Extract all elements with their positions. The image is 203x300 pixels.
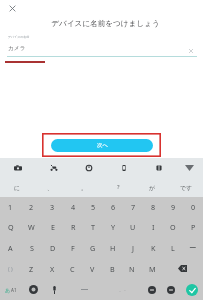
staticText: 4 bbox=[71, 202, 76, 212]
button[interactable]: Y bbox=[103, 217, 123, 237]
staticText: 6 bbox=[111, 202, 116, 212]
button[interactable] bbox=[63, 279, 106, 300]
button[interactable]: C bbox=[62, 258, 82, 279]
button[interactable]: です bbox=[169, 177, 203, 197]
staticText: L bbox=[171, 243, 175, 253]
staticText: B bbox=[110, 264, 115, 274]
button[interactable]: 8 bbox=[143, 197, 163, 217]
button[interactable]: Emoji suggestion bbox=[36, 158, 71, 177]
button[interactable]: M bbox=[142, 258, 162, 279]
staticText: I bbox=[152, 222, 155, 232]
button[interactable]: 9 bbox=[163, 197, 183, 217]
button[interactable]: Clear text bbox=[184, 44, 197, 57]
button[interactable]: F bbox=[63, 237, 83, 258]
staticText: 。 bbox=[81, 184, 87, 191]
button[interactable]: 7 bbox=[123, 197, 143, 217]
staticText: G bbox=[90, 243, 96, 253]
staticText: O bbox=[170, 222, 176, 232]
button[interactable]: あ bbox=[0, 279, 22, 300]
staticText: T bbox=[91, 222, 95, 232]
button[interactable]: U bbox=[123, 217, 143, 237]
staticText: S bbox=[30, 243, 34, 253]
staticText: R bbox=[71, 222, 76, 232]
button[interactable]: R bbox=[63, 217, 83, 237]
button[interactable]: Z bbox=[21, 258, 42, 279]
staticText: 9 bbox=[171, 202, 176, 212]
button[interactable]: Period bbox=[161, 279, 180, 300]
staticText: 次へ bbox=[97, 142, 108, 149]
button[interactable]: S bbox=[21, 237, 42, 258]
staticText: U bbox=[130, 222, 136, 232]
button[interactable]: D bbox=[42, 237, 63, 258]
button[interactable]: ー bbox=[183, 237, 203, 258]
button[interactable]: 次へ bbox=[51, 139, 153, 152]
staticText: W bbox=[28, 222, 35, 232]
staticText: Z bbox=[29, 264, 34, 274]
button[interactable]: 5 bbox=[83, 197, 103, 217]
button[interactable]: ( ) bbox=[0, 258, 21, 279]
staticText: V bbox=[90, 264, 95, 274]
staticText: 8 bbox=[151, 202, 156, 212]
button[interactable]: A bbox=[0, 237, 21, 258]
button[interactable]: O bbox=[163, 217, 183, 237]
button[interactable]: Enter bbox=[180, 279, 203, 300]
button[interactable]: W bbox=[21, 217, 42, 237]
staticText: N bbox=[129, 264, 135, 274]
button[interactable]: 3 bbox=[42, 197, 63, 217]
button[interactable]: N bbox=[122, 258, 142, 279]
button[interactable]: 1 bbox=[0, 197, 21, 217]
button[interactable]: 2 bbox=[21, 197, 42, 217]
staticText: ? bbox=[117, 183, 120, 191]
button[interactable]: T bbox=[83, 217, 103, 237]
button[interactable]: 6 bbox=[103, 197, 123, 217]
staticText: 0 bbox=[191, 202, 196, 212]
button[interactable]: Backspace bbox=[162, 258, 203, 279]
staticText: ー bbox=[189, 243, 197, 252]
button[interactable]: 4 bbox=[63, 197, 83, 217]
staticText: あ bbox=[5, 287, 11, 293]
staticText: カメラ bbox=[8, 45, 26, 52]
staticText: 、 bbox=[47, 184, 53, 191]
staticText: デバイスに名前をつけましょう bbox=[4, 19, 203, 29]
button[interactable]: Q bbox=[0, 217, 21, 237]
button[interactable]: G bbox=[83, 237, 103, 258]
button[interactable]: E bbox=[42, 217, 63, 237]
button[interactable]: Close bbox=[5, 1, 20, 16]
button[interactable]: ? bbox=[101, 177, 135, 197]
button[interactable]: 0 bbox=[183, 197, 203, 217]
button[interactable]: K bbox=[143, 237, 163, 258]
staticText: A1 bbox=[11, 287, 17, 293]
staticText: F bbox=[71, 243, 75, 253]
button[interactable]: I bbox=[143, 217, 163, 237]
button[interactable]: Comma bbox=[142, 279, 161, 300]
button[interactable]: Expand suggestions bbox=[176, 158, 203, 177]
button[interactable]: に bbox=[0, 177, 33, 197]
staticText: Y bbox=[111, 222, 116, 232]
button[interactable]: Emoji suggestion bbox=[0, 158, 36, 177]
staticText: J bbox=[132, 243, 134, 253]
button[interactable]: X bbox=[42, 258, 62, 279]
button[interactable]: B bbox=[102, 258, 122, 279]
button[interactable]: Voice input bbox=[45, 279, 63, 300]
staticText: ( ) bbox=[8, 265, 13, 272]
staticText: が bbox=[149, 184, 155, 191]
staticText: H bbox=[110, 243, 116, 253]
button[interactable]: Emoji keyboard bbox=[22, 279, 45, 300]
button[interactable]: V bbox=[82, 258, 102, 279]
button[interactable]: L bbox=[163, 237, 183, 258]
button[interactable]: Emoji suggestion bbox=[141, 158, 176, 177]
button[interactable]: が bbox=[135, 177, 169, 197]
button[interactable]: H bbox=[103, 237, 123, 258]
staticText: Q bbox=[8, 222, 14, 232]
staticText: C bbox=[70, 264, 75, 274]
button[interactable]: P bbox=[183, 217, 203, 237]
button[interactable]: J bbox=[123, 237, 143, 258]
staticText: P bbox=[191, 222, 196, 232]
button[interactable]: Emoji suggestion bbox=[71, 158, 106, 177]
button[interactable]: Emoji suggestion bbox=[106, 158, 141, 177]
staticText: M bbox=[149, 264, 156, 274]
